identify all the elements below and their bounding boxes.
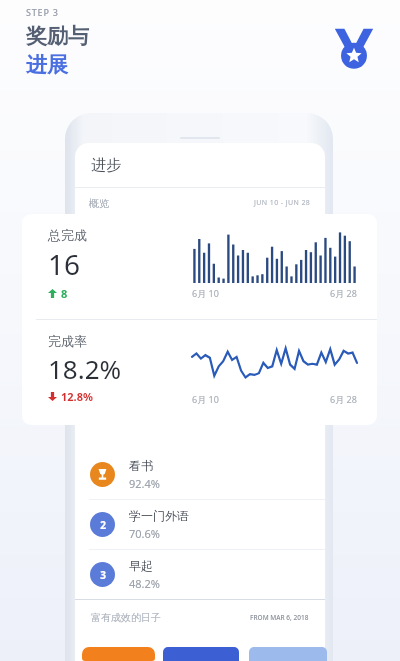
staticText: 学一门外语 [129,508,189,523]
staticText: 富有成效的日子 [91,611,161,624]
staticText: 早起 [129,558,153,573]
button[interactable]: Action three [249,647,327,661]
staticText: 总完成 [48,227,87,243]
button[interactable]: 看书 [75,450,325,499]
button[interactable]: Action one [82,647,155,661]
staticText: 12.8% [61,389,93,404]
staticText: 6月 28 [330,287,357,299]
staticText: 6月 10 [192,393,219,405]
staticText: 48.2% [129,576,160,591]
button[interactable]: Medal award [330,25,378,73]
staticText: 92.4% [129,476,160,491]
staticText: 6月 28 [330,393,357,405]
staticText: 16 [48,245,81,283]
staticText: 70.6% [129,526,160,541]
staticText: 18.2% [48,351,122,386]
staticText: 看书 [129,458,153,473]
staticText: 进展 [26,52,68,78]
staticText: 完成率 [48,333,87,349]
staticText: FROM MAR 6, 2018 [250,613,309,622]
staticText: 奖励与 [26,23,89,49]
staticText: 6月 10 [192,287,219,299]
staticText: STEP 3 [26,6,59,18]
button[interactable]: 2 [75,500,325,549]
button[interactable]: 3 [75,550,325,599]
staticText: 进步 [91,156,121,175]
staticText: 3 [100,568,106,582]
button[interactable]: 完成率 [22,320,377,425]
staticText: 概览 [89,197,109,210]
button[interactable]: Action two [163,647,239,661]
staticText: 2 [100,518,106,532]
staticText: 8 [61,286,68,301]
button[interactable]: 总完成 [22,214,377,319]
staticText: JUN 10 - JUN 28 [254,198,311,208]
